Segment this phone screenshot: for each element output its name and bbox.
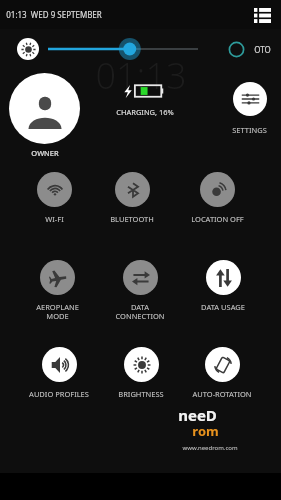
staticText: WI-FI [45, 214, 64, 224]
staticText: OTO [254, 44, 271, 55]
staticText: 01:13 WED 9 SEPTEMBER [6, 9, 102, 20]
staticText: BRIGHTNESS [118, 389, 164, 399]
button[interactable]: AEROPLANE MODE [36, 260, 79, 322]
button[interactable]: BLUETOOTH [110, 172, 154, 224]
staticText: AUTO-ROTATION [192, 389, 252, 399]
button[interactable]: BRIGHTNESS [118, 347, 164, 399]
staticText: LOCATION OFF [191, 214, 244, 224]
button[interactable]: SETTINGS [232, 82, 267, 135]
staticText: 01:13 [95, 51, 187, 91]
staticText: www.needrom.com [182, 444, 238, 452]
staticText: OWNER [31, 148, 59, 158]
button[interactable]: CHARGING, 16% [116, 83, 174, 117]
staticText: CHARGING, 16% [116, 107, 174, 117]
button[interactable]: LOCATION OFF [191, 172, 244, 224]
staticText: SETTINGS [232, 125, 267, 135]
button[interactable]: OWNER [9, 73, 80, 158]
staticText: DATA CONNECTION [115, 302, 165, 322]
staticText: AUDIO PROFILES [29, 389, 89, 399]
button[interactable]: WI-FI [37, 172, 72, 224]
button[interactable]: OTO [228, 41, 271, 58]
button[interactable]: AUTO-ROTATION [192, 347, 252, 399]
button[interactable]: Auto brightness [17, 38, 39, 60]
staticText: BLUETOOTH [110, 214, 154, 224]
button[interactable]: Notifications list [251, 4, 273, 26]
button[interactable]: Brightness slider [48, 39, 198, 59]
staticText: neeD [178, 405, 217, 425]
staticText: DATA USAGE [201, 302, 245, 312]
button[interactable]: DATA CONNECTION [115, 260, 165, 322]
button[interactable]: DATA USAGE [201, 260, 245, 312]
staticText: rom [192, 422, 219, 440]
staticText: AEROPLANE MODE [36, 302, 79, 322]
button[interactable]: AUDIO PROFILES [29, 347, 89, 399]
